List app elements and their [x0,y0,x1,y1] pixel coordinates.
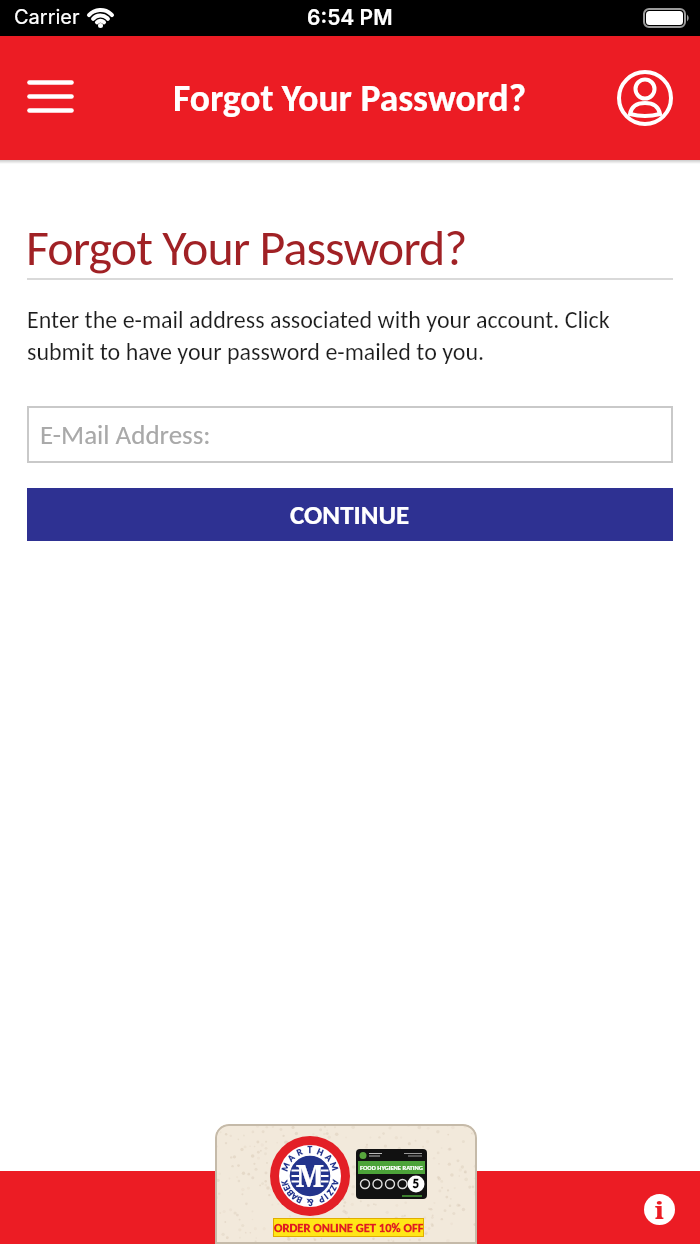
button[interactable]: E-Mail Address: [27,406,673,463]
staticText: Enter the e-mail address associated with… [27,305,610,367]
staticText: Forgot Your Password? [26,217,467,278]
staticText: E-Mail Address: [40,418,211,451]
button[interactable]: ORDER ONLINE GET 10% OFF [215,1124,477,1244]
button[interactable] [610,63,680,133]
staticText: Carrier [14,5,80,29]
staticText: ORDER ONLINE GET 10% OFF [274,1220,424,1235]
staticText: i [655,1193,665,1226]
staticText: CONTINUE [290,498,410,531]
staticText: 6:54 PM [307,5,393,30]
button[interactable]: i [637,1187,682,1232]
staticText: Forgot Your Password? [173,75,527,121]
button[interactable] [13,66,88,126]
button[interactable]: CONTINUE [27,488,673,541]
